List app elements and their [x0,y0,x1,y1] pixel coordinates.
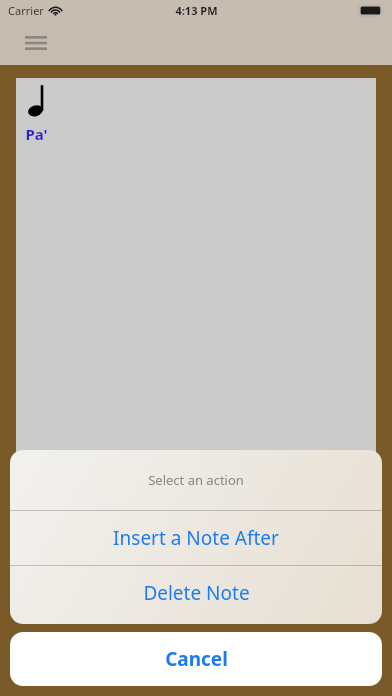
button[interactable]: Cancel [10,632,382,686]
staticText: Carrier [8,3,44,18]
staticText: Cancel [165,646,228,672]
staticText: Delete Note [143,580,250,606]
staticText: Select an action [148,471,244,489]
staticText: Pa' [25,124,48,144]
button[interactable]: Delete Note [10,566,382,620]
staticText: Insert a Note After [113,525,279,551]
staticText: 4:13 PM [175,3,218,18]
button[interactable]: Menu [14,21,58,65]
button[interactable]: Insert a Note After [10,511,382,565]
